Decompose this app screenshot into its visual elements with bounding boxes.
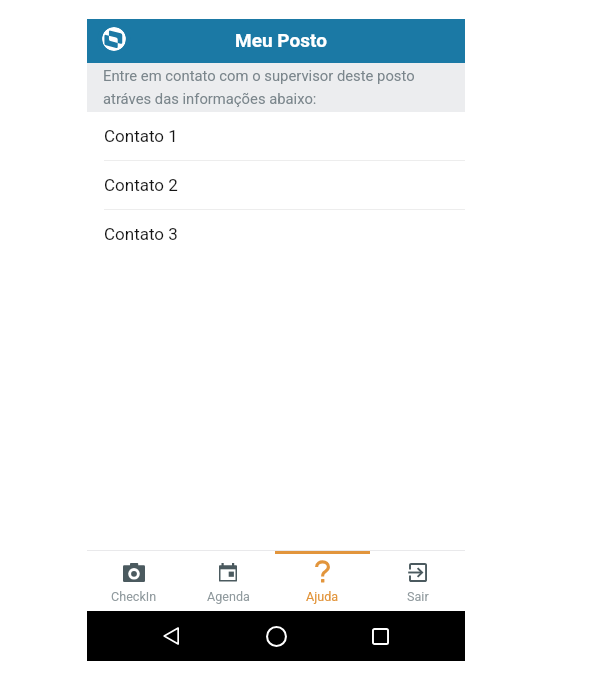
button[interactable]: CheckIn <box>87 551 181 611</box>
staticText: Agenda <box>207 589 250 604</box>
staticText: Contato 2 <box>104 175 178 195</box>
button[interactable]: Back <box>151 616 191 656</box>
staticText: CheckIn <box>111 589 157 604</box>
staticText: Ajuda <box>306 589 339 604</box>
button[interactable]: Contato 1 <box>87 112 465 161</box>
staticText: Contato 3 <box>104 224 178 244</box>
staticText: atráves das informações abaixo: <box>103 90 317 107</box>
staticText: Contato 1 <box>104 126 178 146</box>
staticText: Meu Posto <box>235 29 327 51</box>
button[interactable]: Recents <box>360 616 400 656</box>
staticText: Sair <box>407 589 429 604</box>
button[interactable]: Contato 3 <box>87 210 465 259</box>
button[interactable]: Menu <box>97 22 131 56</box>
button[interactable]: Agenda <box>181 551 275 611</box>
button[interactable]: Ajuda <box>275 551 370 611</box>
button[interactable]: Home <box>256 616 296 656</box>
staticText: Entre em contato com o supervisor deste … <box>103 67 415 84</box>
button[interactable]: Sair <box>370 551 465 611</box>
button[interactable]: Contato 2 <box>87 161 465 210</box>
